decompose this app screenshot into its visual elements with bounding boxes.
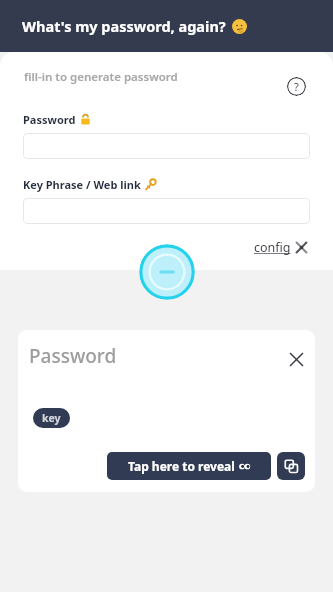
button[interactable]: Tap here to reveal: [107, 452, 271, 480]
staticText: Password: [29, 343, 117, 369]
staticText: ?: [294, 79, 299, 94]
button[interactable]: Help: [287, 77, 306, 96]
button[interactable]: key: [33, 408, 70, 428]
button[interactable]: Copy: [277, 452, 305, 480]
staticText: key: [42, 411, 61, 425]
staticText: What's my password, again?: [22, 16, 226, 36]
button[interactable]: Generate: [139, 244, 195, 300]
button[interactable]: [23, 198, 310, 224]
staticText: Key Phrase / Web link: [23, 177, 141, 192]
staticText: Tap here to reveal: [128, 458, 235, 474]
staticText: fill-in to generate password: [24, 69, 178, 85]
button[interactable]: [23, 133, 310, 159]
staticText: Password: [23, 112, 76, 127]
staticText: config: [254, 239, 291, 256]
button[interactable]: config: [252, 237, 310, 258]
button[interactable]: Close: [285, 348, 307, 370]
